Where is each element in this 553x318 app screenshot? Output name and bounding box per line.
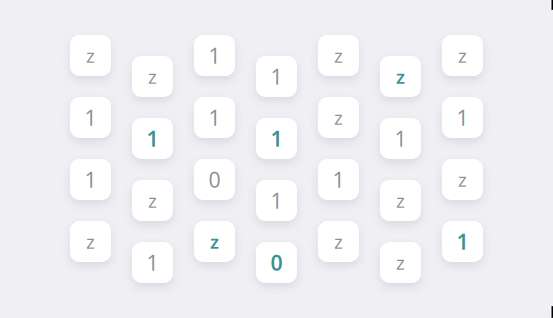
staticText: z (148, 64, 157, 89)
button[interactable]: 1 (194, 97, 235, 138)
button[interactable]: 1 (70, 97, 111, 138)
button[interactable]: z, selected (380, 56, 421, 97)
staticText: z (396, 250, 405, 275)
button[interactable]: 1 (318, 159, 359, 200)
button[interactable]: z, selected (194, 221, 235, 262)
staticText: z (334, 105, 343, 130)
button[interactable]: 1, selected (132, 118, 173, 159)
button[interactable]: z (380, 180, 421, 221)
staticText: z (86, 43, 95, 68)
button[interactable]: z (318, 35, 359, 76)
button[interactable]: 1 (132, 242, 173, 283)
staticText: z (148, 188, 157, 213)
button[interactable]: z (70, 35, 111, 76)
staticText: 0 (270, 248, 282, 277)
button[interactable]: 1 (442, 97, 483, 138)
button[interactable]: 0, selected (256, 242, 297, 283)
staticText: 1 (456, 227, 468, 256)
staticText: 1 (456, 103, 468, 132)
staticText: 1 (146, 124, 158, 153)
staticText: z (86, 229, 95, 254)
staticText: z (396, 188, 405, 213)
button[interactable]: z (380, 242, 421, 283)
staticText: 1 (394, 124, 406, 153)
button[interactable]: 1, selected (256, 118, 297, 159)
button[interactable]: z (318, 221, 359, 262)
staticText: 1 (270, 186, 282, 215)
staticText: 1 (208, 103, 220, 132)
button[interactable]: z (132, 180, 173, 221)
staticText: 1 (208, 41, 220, 70)
staticText: z (458, 167, 467, 192)
staticText: 1 (84, 165, 96, 194)
button[interactable]: 1 (256, 180, 297, 221)
button[interactable]: 1 (194, 35, 235, 76)
button[interactable]: z (442, 35, 483, 76)
button[interactable]: 0 (194, 159, 235, 200)
button[interactable]: 1 (380, 118, 421, 159)
staticText: z (210, 229, 219, 254)
staticText: 1 (270, 62, 282, 91)
staticText: z (396, 64, 405, 89)
staticText: 1 (84, 103, 96, 132)
staticText: 1 (146, 248, 158, 277)
staticText: z (334, 229, 343, 254)
button[interactable]: z (442, 159, 483, 200)
button[interactable]: z (132, 56, 173, 97)
staticText: z (458, 43, 467, 68)
button[interactable]: z (70, 221, 111, 262)
staticText: 0 (208, 165, 220, 194)
button[interactable]: z (318, 97, 359, 138)
button[interactable]: 1 (70, 159, 111, 200)
button[interactable]: 1, selected (442, 221, 483, 262)
staticText: 1 (270, 124, 282, 153)
button[interactable]: 1 (256, 56, 297, 97)
staticText: 1 (332, 165, 344, 194)
staticText: z (334, 43, 343, 68)
